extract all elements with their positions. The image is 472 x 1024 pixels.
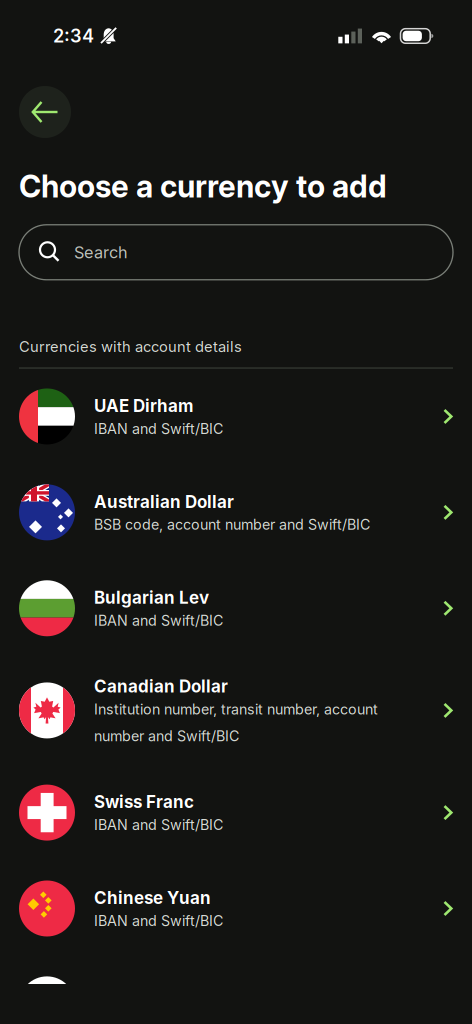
button[interactable]: Australian Dollar	[0, 464, 472, 560]
staticText: Bulgarian Lev	[94, 587, 209, 608]
staticText: UAE Dirham	[94, 396, 193, 416]
staticText: Canadian Dollar	[94, 676, 228, 697]
button[interactable]: UAE Dirham	[0, 368, 472, 464]
staticText: BSB code, account number and Swift/BIC	[94, 516, 370, 533]
staticText: Search	[74, 242, 128, 262]
button[interactable]: Canadian Dollar	[0, 656, 472, 765]
staticText: Currencies with account details	[19, 338, 242, 355]
staticText: IBAN and Swift/BIC	[94, 912, 223, 929]
button[interactable]: Chinese Yuan	[0, 860, 472, 956]
staticText: 2:34	[53, 25, 94, 47]
staticText: IBAN and Swift/BIC	[94, 420, 223, 437]
button[interactable]: Back	[19, 86, 71, 138]
staticText: Chinese Yuan	[94, 888, 211, 908]
button[interactable]: Czech Koruna	[0, 956, 472, 1024]
staticText: IBAN and Swift/BIC	[94, 816, 223, 833]
staticText: Choose a currency to add	[19, 168, 387, 205]
button[interactable]: Swiss Franc	[0, 765, 472, 860]
button[interactable]: Bulgarian Lev	[0, 560, 472, 656]
staticText: Swiss Franc	[94, 792, 194, 812]
staticText: Institution number, transit number, acco…	[94, 701, 378, 745]
staticText: IBAN and Swift/BIC	[94, 612, 223, 629]
button[interactable]: Search	[19, 225, 453, 280]
staticText: Australian Dollar	[94, 491, 234, 512]
